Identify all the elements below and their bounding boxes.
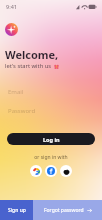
- button[interactable]: Sign in with Facebook: [45, 165, 57, 177]
- staticText: Password: [8, 107, 36, 115]
- button[interactable]: Password: [0, 103, 102, 119]
- staticText: Log in: [43, 136, 60, 143]
- button[interactable]: Sign in with Apple: [60, 165, 72, 177]
- staticText: 9:41: [6, 3, 17, 10]
- staticText: Welcome,: [5, 47, 59, 62]
- button[interactable]: Sign up: [0, 200, 33, 220]
- staticText: Email: [8, 88, 24, 96]
- button[interactable]: Log in: [7, 133, 95, 145]
- staticText: or sign in with: [0, 154, 102, 161]
- button[interactable]: Forgot password: [33, 200, 102, 220]
- button[interactable]: Email: [0, 84, 102, 100]
- staticText: Sign up: [8, 207, 26, 214]
- button[interactable]: Sign in with Google: [30, 165, 42, 177]
- staticText: let's start with us: [5, 62, 52, 70]
- staticText: Forgot password: [44, 207, 84, 214]
